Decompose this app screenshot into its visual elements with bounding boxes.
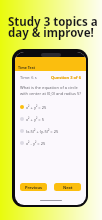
button[interactable]: Previous	[20, 183, 47, 191]
button[interactable]: x² + y² = 5	[15, 113, 86, 125]
staticText: Next	[63, 185, 73, 190]
staticText: Time Test	[18, 65, 36, 70]
staticText: (x-5)² + (y-5)² = 25	[26, 129, 59, 134]
button[interactable]: (x-5)² + (y-5)² = 25	[15, 125, 86, 137]
staticText: Question 3 of 6	[51, 75, 81, 80]
staticText: day & improve!	[8, 25, 94, 41]
staticText: x² + y² = 5	[26, 117, 44, 122]
button[interactable]: Next	[54, 183, 81, 191]
staticText: x² - y² = 25	[26, 141, 46, 146]
staticText: x² + y² = 25	[26, 105, 47, 110]
staticText: Previous	[25, 185, 43, 190]
button[interactable]: x² - y² = 25	[15, 137, 86, 149]
staticText: Time: 6 s	[20, 75, 37, 80]
staticText: Study 3 topics a	[8, 14, 98, 30]
button[interactable]: x² + y² = 25	[15, 101, 86, 113]
staticText: What is the equation of a circle with ce…	[20, 85, 81, 97]
